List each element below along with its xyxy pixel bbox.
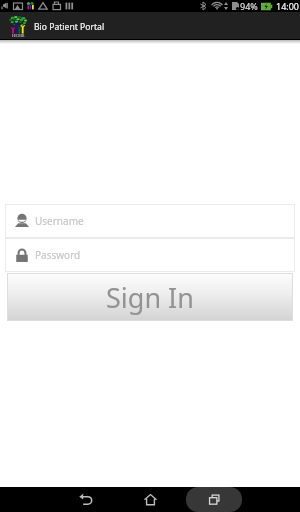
staticText: Username <box>35 214 84 228</box>
button[interactable]: Password <box>5 238 295 272</box>
button[interactable]: HEMR <box>0 12 300 39</box>
button[interactable]: Username <box>5 204 295 238</box>
staticText: Sign In <box>106 279 194 316</box>
button[interactable]: Sign In <box>7 273 293 321</box>
button[interactable]: Home <box>118 487 182 512</box>
staticText: Password <box>35 248 81 262</box>
staticText: HEMR <box>12 33 25 39</box>
staticText: 14:00 <box>276 0 300 12</box>
staticText: Bio Patient Portal <box>34 21 105 33</box>
staticText: 94% <box>240 0 258 12</box>
button[interactable]: Recents <box>182 487 246 512</box>
button[interactable]: Back <box>54 487 118 512</box>
